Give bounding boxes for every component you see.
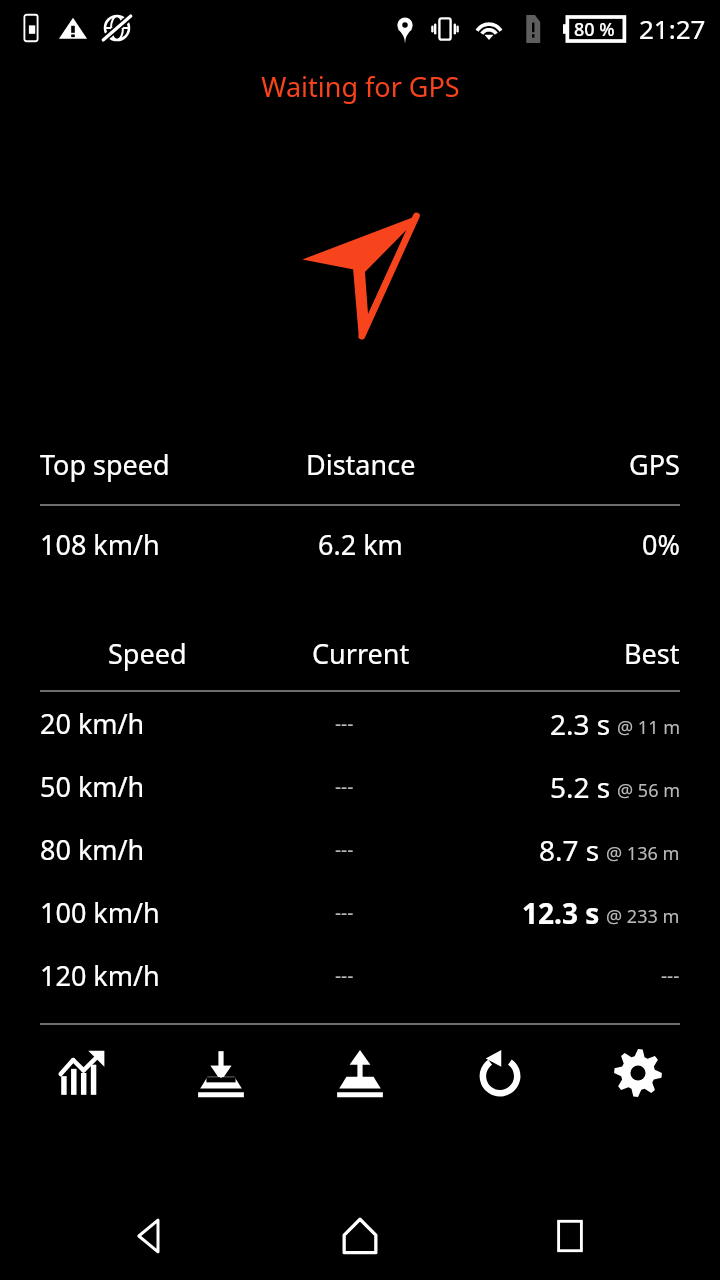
- staticText: 2.3 s: [550, 705, 611, 743]
- staticText: Speed: [108, 635, 187, 672]
- button[interactable]: Back: [90, 1192, 210, 1280]
- button[interactable]: Import: [173, 1030, 269, 1116]
- staticText: Best: [624, 635, 680, 672]
- staticText: 80 km/h: [40, 831, 145, 868]
- staticText: Top speed: [40, 446, 170, 483]
- staticText: 0%: [642, 526, 680, 563]
- staticText: GPS: [629, 446, 680, 483]
- staticText: @ 56 m: [617, 778, 680, 803]
- staticText: @ 233 m: [606, 904, 680, 929]
- staticText: ---: [335, 900, 354, 926]
- staticText: ---: [335, 711, 354, 737]
- button[interactable]: Statistics: [34, 1030, 130, 1116]
- staticText: ---: [661, 963, 680, 989]
- staticText: 80 %: [574, 17, 615, 42]
- staticText: 6.2 km: [318, 526, 403, 563]
- staticText: Distance: [306, 446, 416, 483]
- staticText: 8.7 s: [539, 831, 600, 869]
- staticText: 20 km/h: [40, 705, 145, 742]
- button[interactable]: Reset: [451, 1030, 547, 1116]
- staticText: ---: [335, 837, 354, 863]
- staticText: ---: [335, 963, 354, 989]
- staticText: 50 km/h: [40, 768, 145, 805]
- staticText: @ 136 m: [606, 841, 680, 866]
- staticText: ---: [335, 774, 354, 800]
- staticText: @ 11 m: [617, 715, 680, 740]
- staticText: 12.3 s: [522, 894, 600, 932]
- staticText: 120 km/h: [40, 957, 160, 994]
- button[interactable]: Settings: [590, 1030, 686, 1116]
- button[interactable]: Recents: [510, 1192, 630, 1280]
- staticText: 5.2 s: [550, 768, 611, 806]
- button[interactable]: Export: [312, 1030, 408, 1116]
- staticText: 21:27: [639, 11, 706, 46]
- staticText: 108 km/h: [40, 526, 160, 563]
- staticText: Current: [312, 635, 410, 672]
- button[interactable]: Home: [300, 1192, 420, 1280]
- staticText: 100 km/h: [40, 894, 160, 931]
- staticText: Waiting for GPS: [261, 68, 460, 105]
